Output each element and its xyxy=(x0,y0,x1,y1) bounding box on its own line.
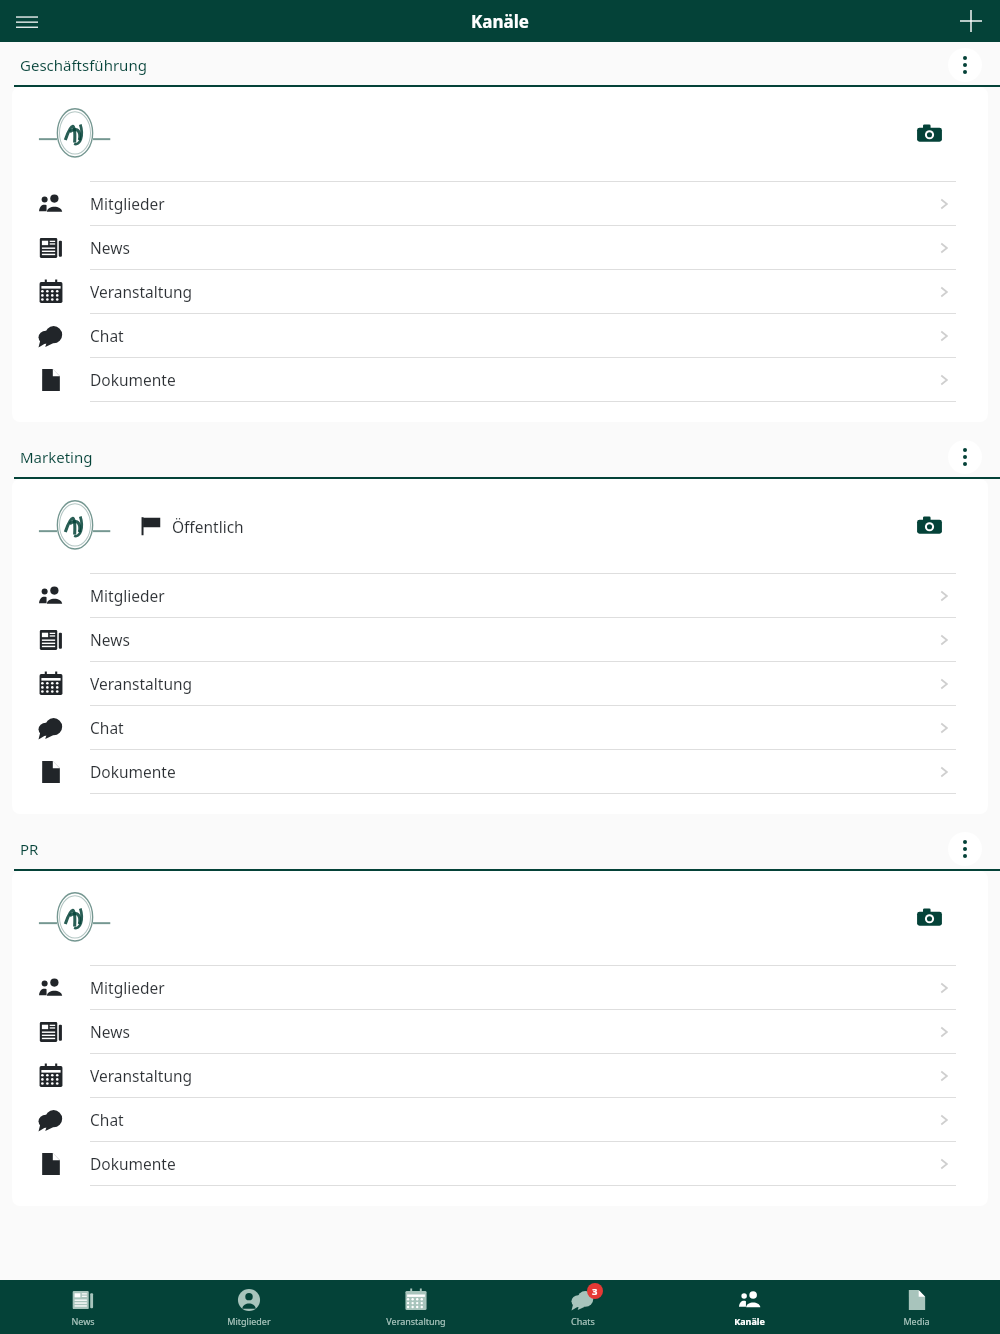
staticText: Mitglieder xyxy=(90,977,165,998)
button[interactable]: Foto aufnehmen xyxy=(912,901,946,935)
button[interactable]: Mitglieder xyxy=(12,182,988,226)
staticText: Veranstaltung xyxy=(386,1315,446,1327)
button[interactable]: Veranstaltung xyxy=(12,1054,988,1098)
staticText: News xyxy=(90,1021,130,1042)
button[interactable]: Chat xyxy=(12,314,988,358)
staticText: Dokumente xyxy=(90,1153,176,1174)
staticText: Marketing xyxy=(20,447,93,467)
button[interactable]: Veranstaltung xyxy=(12,270,988,314)
staticText: News xyxy=(71,1315,95,1327)
staticText: PR xyxy=(20,839,39,859)
button[interactable]: Mehr Optionen xyxy=(948,832,982,866)
button[interactable]: Kanal hinzufügen xyxy=(952,2,990,40)
staticText: News xyxy=(90,237,130,258)
button[interactable]: 3 xyxy=(499,1280,666,1334)
button[interactable]: Dokumente xyxy=(12,1142,988,1186)
staticText: Kanäle xyxy=(734,1315,765,1327)
button[interactable]: Chat xyxy=(12,1098,988,1142)
staticText: Chats xyxy=(571,1315,595,1327)
button[interactable]: Menü xyxy=(8,2,46,40)
staticText: Dokumente xyxy=(90,761,176,782)
staticText: Chat xyxy=(90,1109,124,1130)
staticText: Mitglieder xyxy=(90,193,165,214)
button[interactable]: News xyxy=(12,226,988,270)
staticText: Media xyxy=(903,1315,930,1327)
staticText: Veranstaltung xyxy=(90,1065,193,1086)
button[interactable]: Mitglieder xyxy=(166,1280,332,1334)
staticText: Veranstaltung xyxy=(90,281,193,302)
button[interactable]: News xyxy=(0,1280,166,1334)
staticText: Mitglieder xyxy=(227,1315,271,1327)
button[interactable]: Veranstaltung xyxy=(332,1280,499,1334)
staticText: News xyxy=(90,629,130,650)
staticText: Öffentlich xyxy=(172,516,244,537)
button[interactable]: Foto aufnehmen xyxy=(912,117,946,151)
staticText: Chat xyxy=(90,325,124,346)
button[interactable]: Foto aufnehmen xyxy=(912,509,946,543)
staticText: Veranstaltung xyxy=(90,673,193,694)
button[interactable]: Mitglieder xyxy=(12,574,988,618)
staticText: Mitglieder xyxy=(90,585,165,606)
button[interactable]: Mehr Optionen xyxy=(948,440,982,474)
staticText: Dokumente xyxy=(90,369,176,390)
button[interactable]: Dokumente xyxy=(12,358,988,402)
button[interactable]: Mitglieder xyxy=(12,966,988,1010)
button[interactable]: Mehr Optionen xyxy=(948,48,982,82)
button[interactable]: Kanäle xyxy=(666,1280,833,1334)
staticText: Geschäftsführung xyxy=(20,55,147,75)
button[interactable]: Chat xyxy=(12,706,988,750)
button[interactable]: Dokumente xyxy=(12,750,988,794)
staticText: Chat xyxy=(90,717,124,738)
button[interactable]: News xyxy=(12,1010,988,1054)
button[interactable]: Media xyxy=(833,1280,1000,1334)
staticText: 3 xyxy=(592,1285,598,1298)
button[interactable]: Veranstaltung xyxy=(12,662,988,706)
staticText: Kanäle xyxy=(471,10,529,33)
button[interactable]: News xyxy=(12,618,988,662)
